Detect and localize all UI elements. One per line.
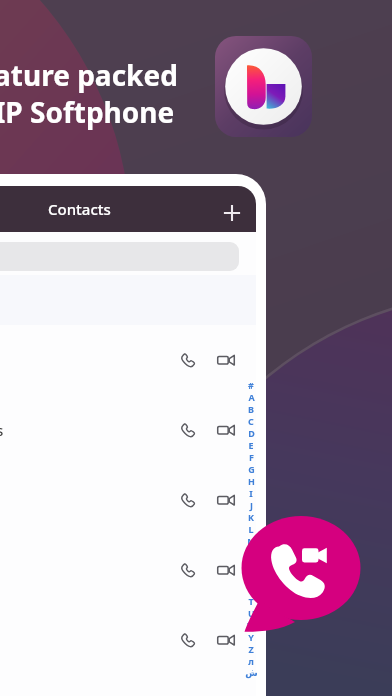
button[interactable]: Call	[180, 422, 197, 439]
button[interactable]: Video call	[217, 351, 235, 369]
staticText: SIP Softphone	[0, 93, 175, 131]
button[interactable]: New call	[236, 510, 368, 636]
button[interactable]: Brian Adams	[0, 395, 256, 465]
staticText: Z	[248, 643, 254, 655]
staticText: W	[247, 619, 256, 631]
button[interactable]: Alex Boyd	[0, 325, 256, 395]
button[interactable]: Video call	[217, 561, 235, 579]
button[interactable]: Carl Dean	[0, 465, 256, 535]
staticText: Contacts	[48, 199, 111, 219]
staticText: K	[248, 511, 254, 523]
staticText: #	[248, 379, 254, 391]
button[interactable]: Video call	[217, 631, 235, 649]
button[interactable]: Call	[180, 492, 197, 509]
button[interactable]: Emily Dale	[0, 535, 256, 605]
staticText: J	[250, 499, 253, 511]
staticText: H	[248, 475, 255, 487]
staticText: л	[248, 655, 254, 667]
staticText: M	[247, 535, 256, 547]
staticText: G	[248, 463, 255, 475]
button[interactable]: Video call	[217, 491, 235, 509]
staticText: I	[249, 487, 253, 499]
button[interactable]: Call	[180, 352, 197, 369]
button[interactable]: Contacts	[0, 186, 256, 232]
button[interactable]: App icon	[215, 36, 312, 137]
button[interactable]: Video call	[217, 421, 235, 439]
staticText: C	[248, 415, 254, 427]
staticText: S	[249, 583, 254, 595]
staticText: D	[248, 427, 255, 439]
staticText: B	[248, 403, 254, 415]
staticText: L	[248, 523, 254, 535]
staticText: ش	[245, 668, 258, 678]
staticText: Y	[248, 631, 254, 643]
staticText: U	[248, 607, 255, 619]
button[interactable]: Call	[180, 562, 197, 579]
staticText: F	[249, 451, 254, 463]
staticText: A	[248, 391, 255, 403]
button[interactable]: William Lee	[0, 605, 256, 675]
staticText: Feature packed	[0, 56, 178, 94]
button[interactable]: Add contact	[218, 199, 246, 227]
button[interactable]: Call	[180, 632, 197, 649]
staticText: T	[248, 595, 254, 607]
staticText: E	[248, 439, 254, 451]
staticText: Brian Adams	[0, 421, 4, 440]
